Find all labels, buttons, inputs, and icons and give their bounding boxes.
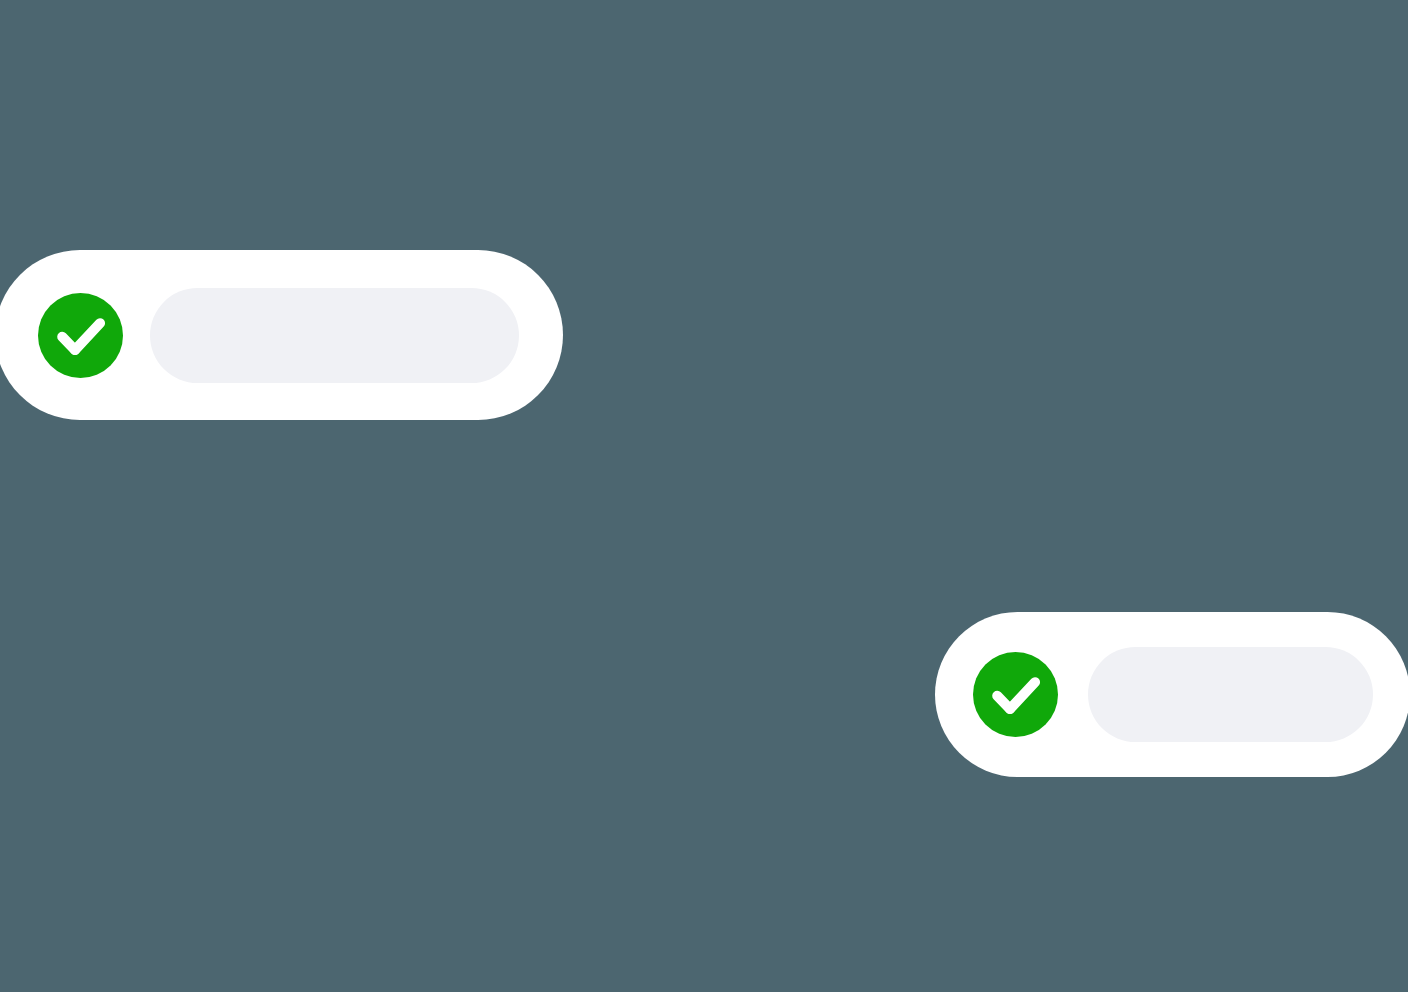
button[interactable]: Completed [0, 250, 563, 420]
button[interactable]: Completed [935, 612, 1408, 777]
button[interactable]: Completed [38, 293, 123, 378]
button[interactable]: Completed [973, 652, 1058, 737]
